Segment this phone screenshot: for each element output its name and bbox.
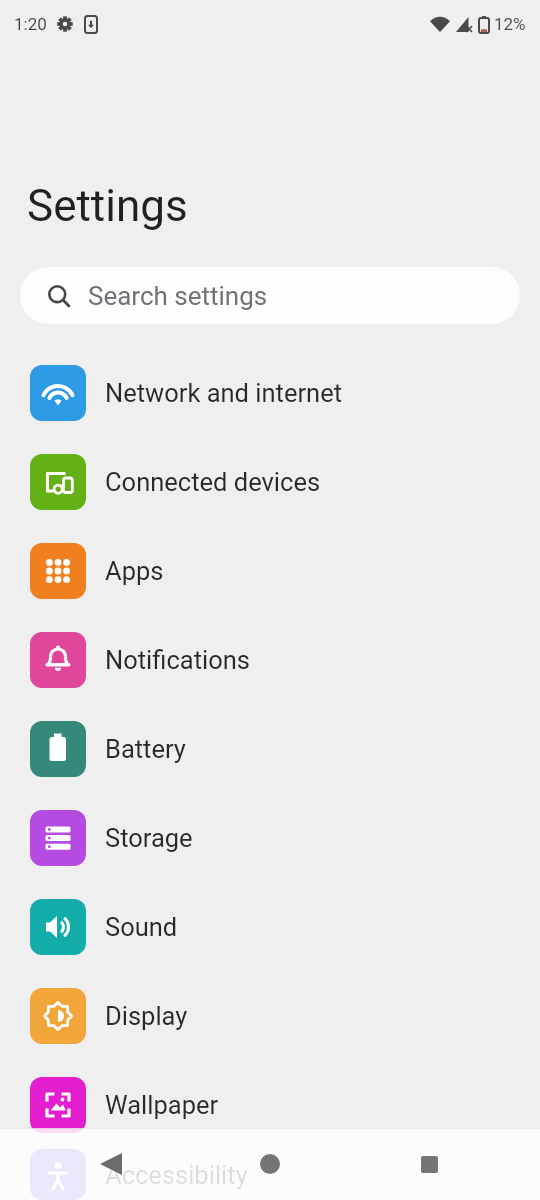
staticText: Wallpaper xyxy=(105,1090,219,1120)
button[interactable]: Sound xyxy=(0,882,540,971)
staticText: Apps xyxy=(105,556,164,586)
button[interactable]: Connected devices xyxy=(0,437,540,526)
staticText: 1:20 xyxy=(14,14,47,34)
button[interactable]: Display xyxy=(0,971,540,1060)
button[interactable]: Notifications xyxy=(0,615,540,704)
button[interactable]: Storage xyxy=(0,793,540,882)
button[interactable]: Search settings xyxy=(20,267,520,324)
button[interactable]: Wallpaper xyxy=(0,1060,540,1149)
staticText: Sound xyxy=(105,912,178,942)
staticText: 12% xyxy=(494,14,526,34)
button[interactable]: Accessibility xyxy=(0,1149,540,1200)
staticText: Network and internet xyxy=(105,378,343,408)
staticText: Accessibility xyxy=(105,1160,248,1190)
button[interactable] xyxy=(411,1146,447,1182)
button[interactable]: Network and internet xyxy=(0,348,540,437)
staticText: Connected devices xyxy=(105,467,321,497)
button[interactable]: Apps xyxy=(0,526,540,615)
staticText: Battery xyxy=(105,734,186,764)
staticText: Settings xyxy=(27,180,188,232)
button[interactable] xyxy=(252,1146,288,1182)
staticText: Storage xyxy=(105,823,193,853)
staticText: Display xyxy=(105,1001,188,1031)
staticText: Notifications xyxy=(105,645,250,675)
button[interactable]: Battery xyxy=(0,704,540,793)
staticText: Search settings xyxy=(88,281,268,311)
button[interactable] xyxy=(93,1146,129,1182)
